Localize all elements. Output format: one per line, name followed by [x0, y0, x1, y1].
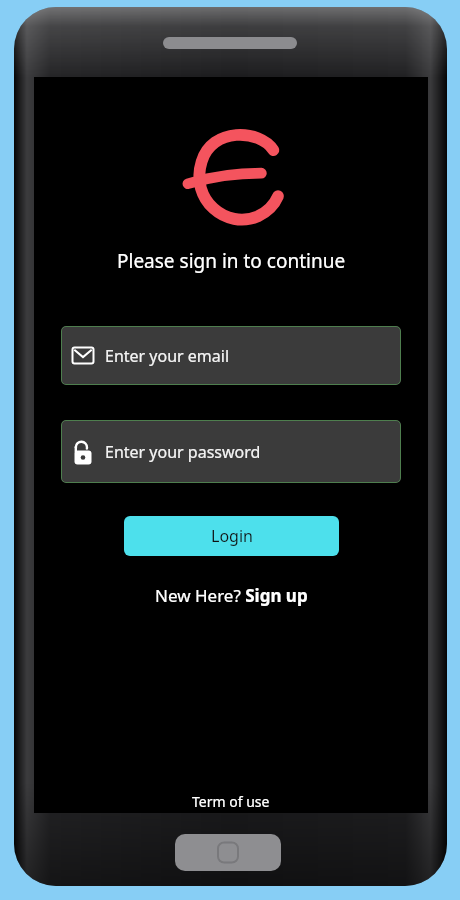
button[interactable]: New Here? Sign up	[149, 582, 314, 609]
button[interactable]: Enter your password	[61, 420, 401, 483]
staticText: Enter your email	[105, 345, 230, 367]
button[interactable]: Login	[124, 516, 339, 556]
staticText: Login	[211, 525, 253, 547]
staticText: Please sign in to continue	[117, 248, 346, 274]
staticText: Term of use	[192, 792, 270, 811]
button[interactable]: Enter your email	[61, 326, 401, 385]
staticText: New Here? Sign up	[155, 584, 308, 607]
staticText: Enter your password	[105, 441, 261, 463]
button[interactable]: Term of use	[186, 790, 276, 813]
button[interactable]: Home	[175, 834, 281, 871]
